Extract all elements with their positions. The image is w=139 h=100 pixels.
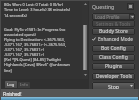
button[interactable]: Enhanced Mode [92,36,136,42]
staticText: -5371.167, 35.76831>) [4,47,44,52]
staticText: Load Profile [95,14,120,20]
button[interactable]: Developer Tools [92,73,135,80]
staticText: Finished! [3,91,22,97]
staticText: Settings & Tools [96,21,131,27]
staticText: Plugins [105,63,123,70]
staticText: Time to Level: 3 hour(s) 38 minute(s) [4,7,71,12]
button[interactable]: Window menu [127,3,134,10]
staticText: associated quest) [4,32,36,37]
staticText: 14 second(s) [4,13,27,18]
staticText: Flying to Destination: <-3675.563, [4,37,65,42]
staticText: Info [20,82,28,88]
button[interactable]: Load Profile [92,13,135,20]
button[interactable]: Bot Config [92,45,135,52]
staticText: Highlands [Cava] $RevS" @unknown [4,62,70,67]
staticText: Questing [92,3,115,10]
staticText: -5371.167, 35.76831> (<-3675.563, [4,42,67,47]
staticText: Stop [108,83,120,90]
staticText: [Rel *[N-Quest] [84-85] Twilight [4,57,61,62]
staticText: Log [7,82,15,88]
staticText: -5371.167, 35.76831>) [4,52,44,57]
button[interactable]: Stop [92,82,135,90]
staticText: Goal: FlyTo v1581: In Progress (no [4,27,66,32]
staticText: Enhanced Mode [98,36,133,42]
staticText: Buddy Store [99,28,128,35]
button[interactable]: Log [5,81,17,88]
button[interactable]: Class Config [92,54,135,61]
staticText: Developer Tools [96,73,132,80]
staticText: line] [4,68,12,73]
button[interactable]: Info [18,82,30,88]
button[interactable]: Settings & Tools [92,20,135,27]
staticText: BGs Won: 0 Lost: 0 Total: 0 (0/hr) [4,2,63,7]
staticText: Class Config [99,54,128,61]
button[interactable]: Plugins [92,63,135,70]
staticText: Bot Config [101,45,126,52]
button[interactable]: Buddy Store [92,28,135,35]
